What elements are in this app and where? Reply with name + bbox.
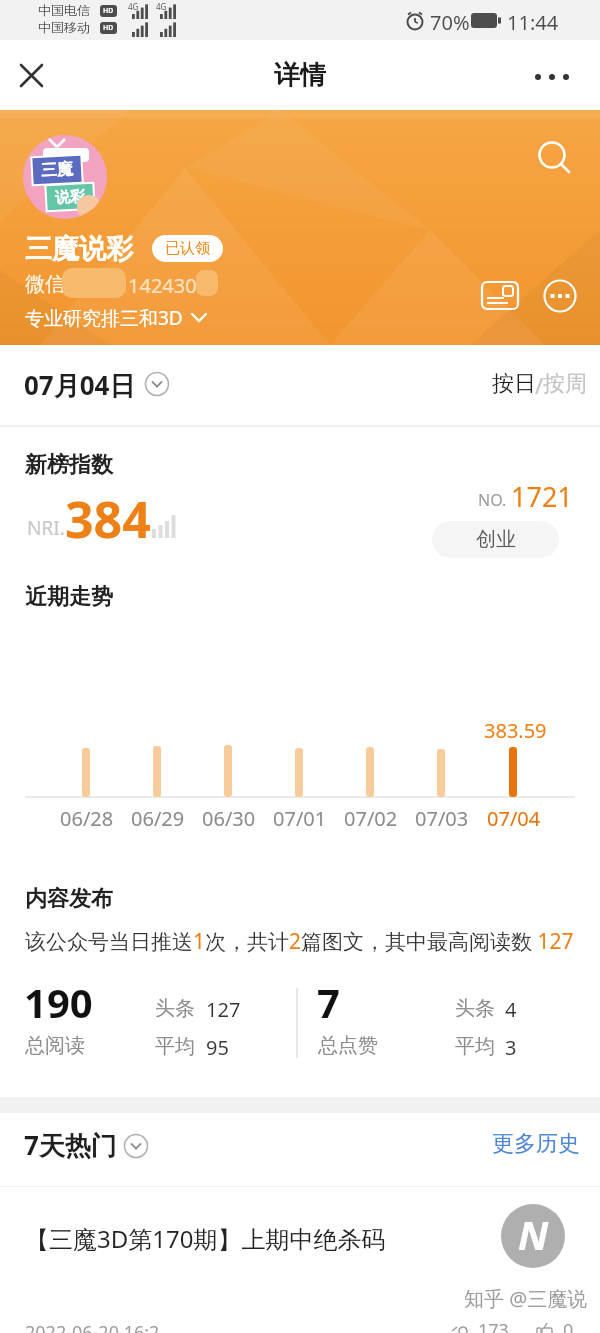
staticText: 06/28 bbox=[60, 805, 114, 832]
staticText: 3 bbox=[505, 1034, 517, 1061]
button[interactable] bbox=[0, 345, 600, 425]
staticText: 【三魔3D第170期】上期中绝杀码 bbox=[25, 1222, 386, 1255]
staticText: 总阅读 bbox=[25, 1033, 85, 1058]
staticText: 说彩 bbox=[54, 187, 85, 208]
button[interactable] bbox=[0, 1187, 600, 1307]
button[interactable] bbox=[528, 58, 584, 94]
staticText: 专业研究排三和3D bbox=[25, 305, 183, 331]
button[interactable] bbox=[14, 58, 50, 94]
button[interactable]: 三魔 bbox=[23, 135, 107, 219]
staticText: 新榜指数 bbox=[25, 451, 113, 479]
button[interactable] bbox=[542, 278, 578, 314]
staticText: 95 bbox=[206, 1034, 229, 1061]
staticText: 按周 bbox=[543, 370, 587, 398]
staticText: 知乎 @三魔说 bbox=[464, 1285, 588, 1312]
staticText: 06/30 bbox=[202, 805, 256, 832]
staticText: 2022-06-20 16:2 bbox=[25, 1320, 160, 1333]
button[interactable] bbox=[535, 140, 575, 180]
staticText: 更多历史 bbox=[492, 1130, 580, 1158]
staticText: 三魔说彩 bbox=[25, 232, 133, 266]
staticText: 已认领 bbox=[165, 239, 210, 258]
staticText: 7 bbox=[317, 975, 340, 1029]
staticText: 127 bbox=[206, 996, 241, 1023]
staticText: 微信 bbox=[25, 272, 65, 297]
staticText: 中国电信 bbox=[38, 2, 90, 18]
staticText: 4 bbox=[505, 996, 517, 1023]
staticText: 平均 bbox=[455, 1034, 495, 1059]
staticText: HD bbox=[103, 6, 114, 16]
staticText: 7天热门 bbox=[24, 1127, 117, 1163]
staticText: 头条 bbox=[155, 996, 195, 1021]
staticText: 0 bbox=[563, 1318, 574, 1333]
staticText: HD bbox=[103, 23, 114, 33]
staticText: / bbox=[535, 370, 544, 400]
staticText: 07/01 bbox=[273, 805, 327, 832]
staticText: 1721 bbox=[511, 478, 573, 515]
staticText: 4G bbox=[128, 1, 139, 12]
staticText: 创业 bbox=[476, 527, 516, 552]
button[interactable] bbox=[488, 365, 580, 395]
staticText: 总点赞 bbox=[318, 1033, 378, 1058]
staticText: 07/04 bbox=[487, 805, 541, 832]
staticText: 173 bbox=[478, 1318, 509, 1333]
staticText: 384 bbox=[65, 485, 151, 553]
staticText: 该公众号当日推送1次，共计2篇图文，其中最高阅读数 127 bbox=[25, 927, 574, 956]
staticText: 383.59 bbox=[484, 717, 547, 744]
staticText: 190 bbox=[24, 975, 93, 1029]
staticText: 06/29 bbox=[131, 805, 185, 832]
staticText: 07月04日 bbox=[24, 367, 136, 403]
staticText: N bbox=[518, 1207, 549, 1261]
staticText: 三魔 bbox=[40, 159, 73, 181]
staticText: 中国移动 bbox=[38, 19, 90, 35]
staticText: NO. bbox=[478, 489, 507, 511]
button[interactable] bbox=[480, 278, 522, 312]
staticText: 内容发布 bbox=[25, 885, 113, 913]
staticText: 详情 bbox=[274, 59, 326, 92]
button[interactable] bbox=[0, 1113, 600, 1186]
staticText: 11:44 bbox=[507, 9, 559, 36]
staticText: 07/03 bbox=[415, 805, 469, 832]
staticText: 按日 bbox=[492, 370, 536, 398]
staticText: 1424302 bbox=[128, 272, 209, 299]
button[interactable]: 创业 bbox=[432, 521, 559, 558]
staticText: 70% bbox=[430, 9, 470, 36]
staticText: NRI. bbox=[27, 515, 65, 541]
button[interactable]: 已认领 bbox=[152, 235, 223, 262]
button[interactable] bbox=[485, 1125, 585, 1157]
staticText: 4G bbox=[156, 1, 167, 12]
staticText: 头条 bbox=[455, 996, 495, 1021]
staticText: 平均 bbox=[155, 1034, 195, 1059]
staticText: 07/02 bbox=[344, 805, 398, 832]
staticText: 近期走势 bbox=[25, 583, 113, 611]
